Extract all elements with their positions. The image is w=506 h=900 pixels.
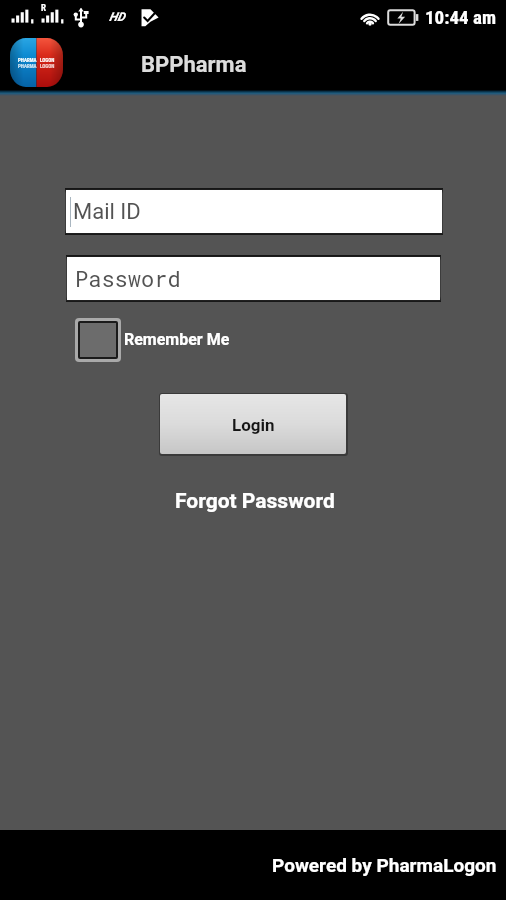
staticText: Login: [232, 415, 275, 435]
staticText: 10:44 am: [425, 6, 497, 28]
staticText: Forgot Password: [175, 489, 335, 514]
staticText: LOGON: [40, 57, 55, 63]
button[interactable]: Login: [160, 394, 346, 454]
staticText: LOGON: [40, 63, 55, 69]
staticText: Remember Me: [124, 330, 230, 349]
staticText: PHARMA: [18, 57, 37, 63]
button[interactable]: Forgot Password: [169, 485, 341, 518]
staticText: HD: [109, 10, 125, 24]
button[interactable]: Mail ID: [66, 190, 442, 233]
staticText: PHARMA: [18, 63, 37, 69]
staticText: BPPharma: [141, 52, 247, 78]
other: App logo: [10, 38, 63, 87]
staticText: Powered by PharmaLogon: [272, 854, 497, 876]
staticText: R: [41, 3, 46, 14]
button[interactable]: Password: [67, 257, 440, 300]
staticText: Password: [75, 264, 181, 293]
staticText: Mail ID: [73, 199, 141, 225]
